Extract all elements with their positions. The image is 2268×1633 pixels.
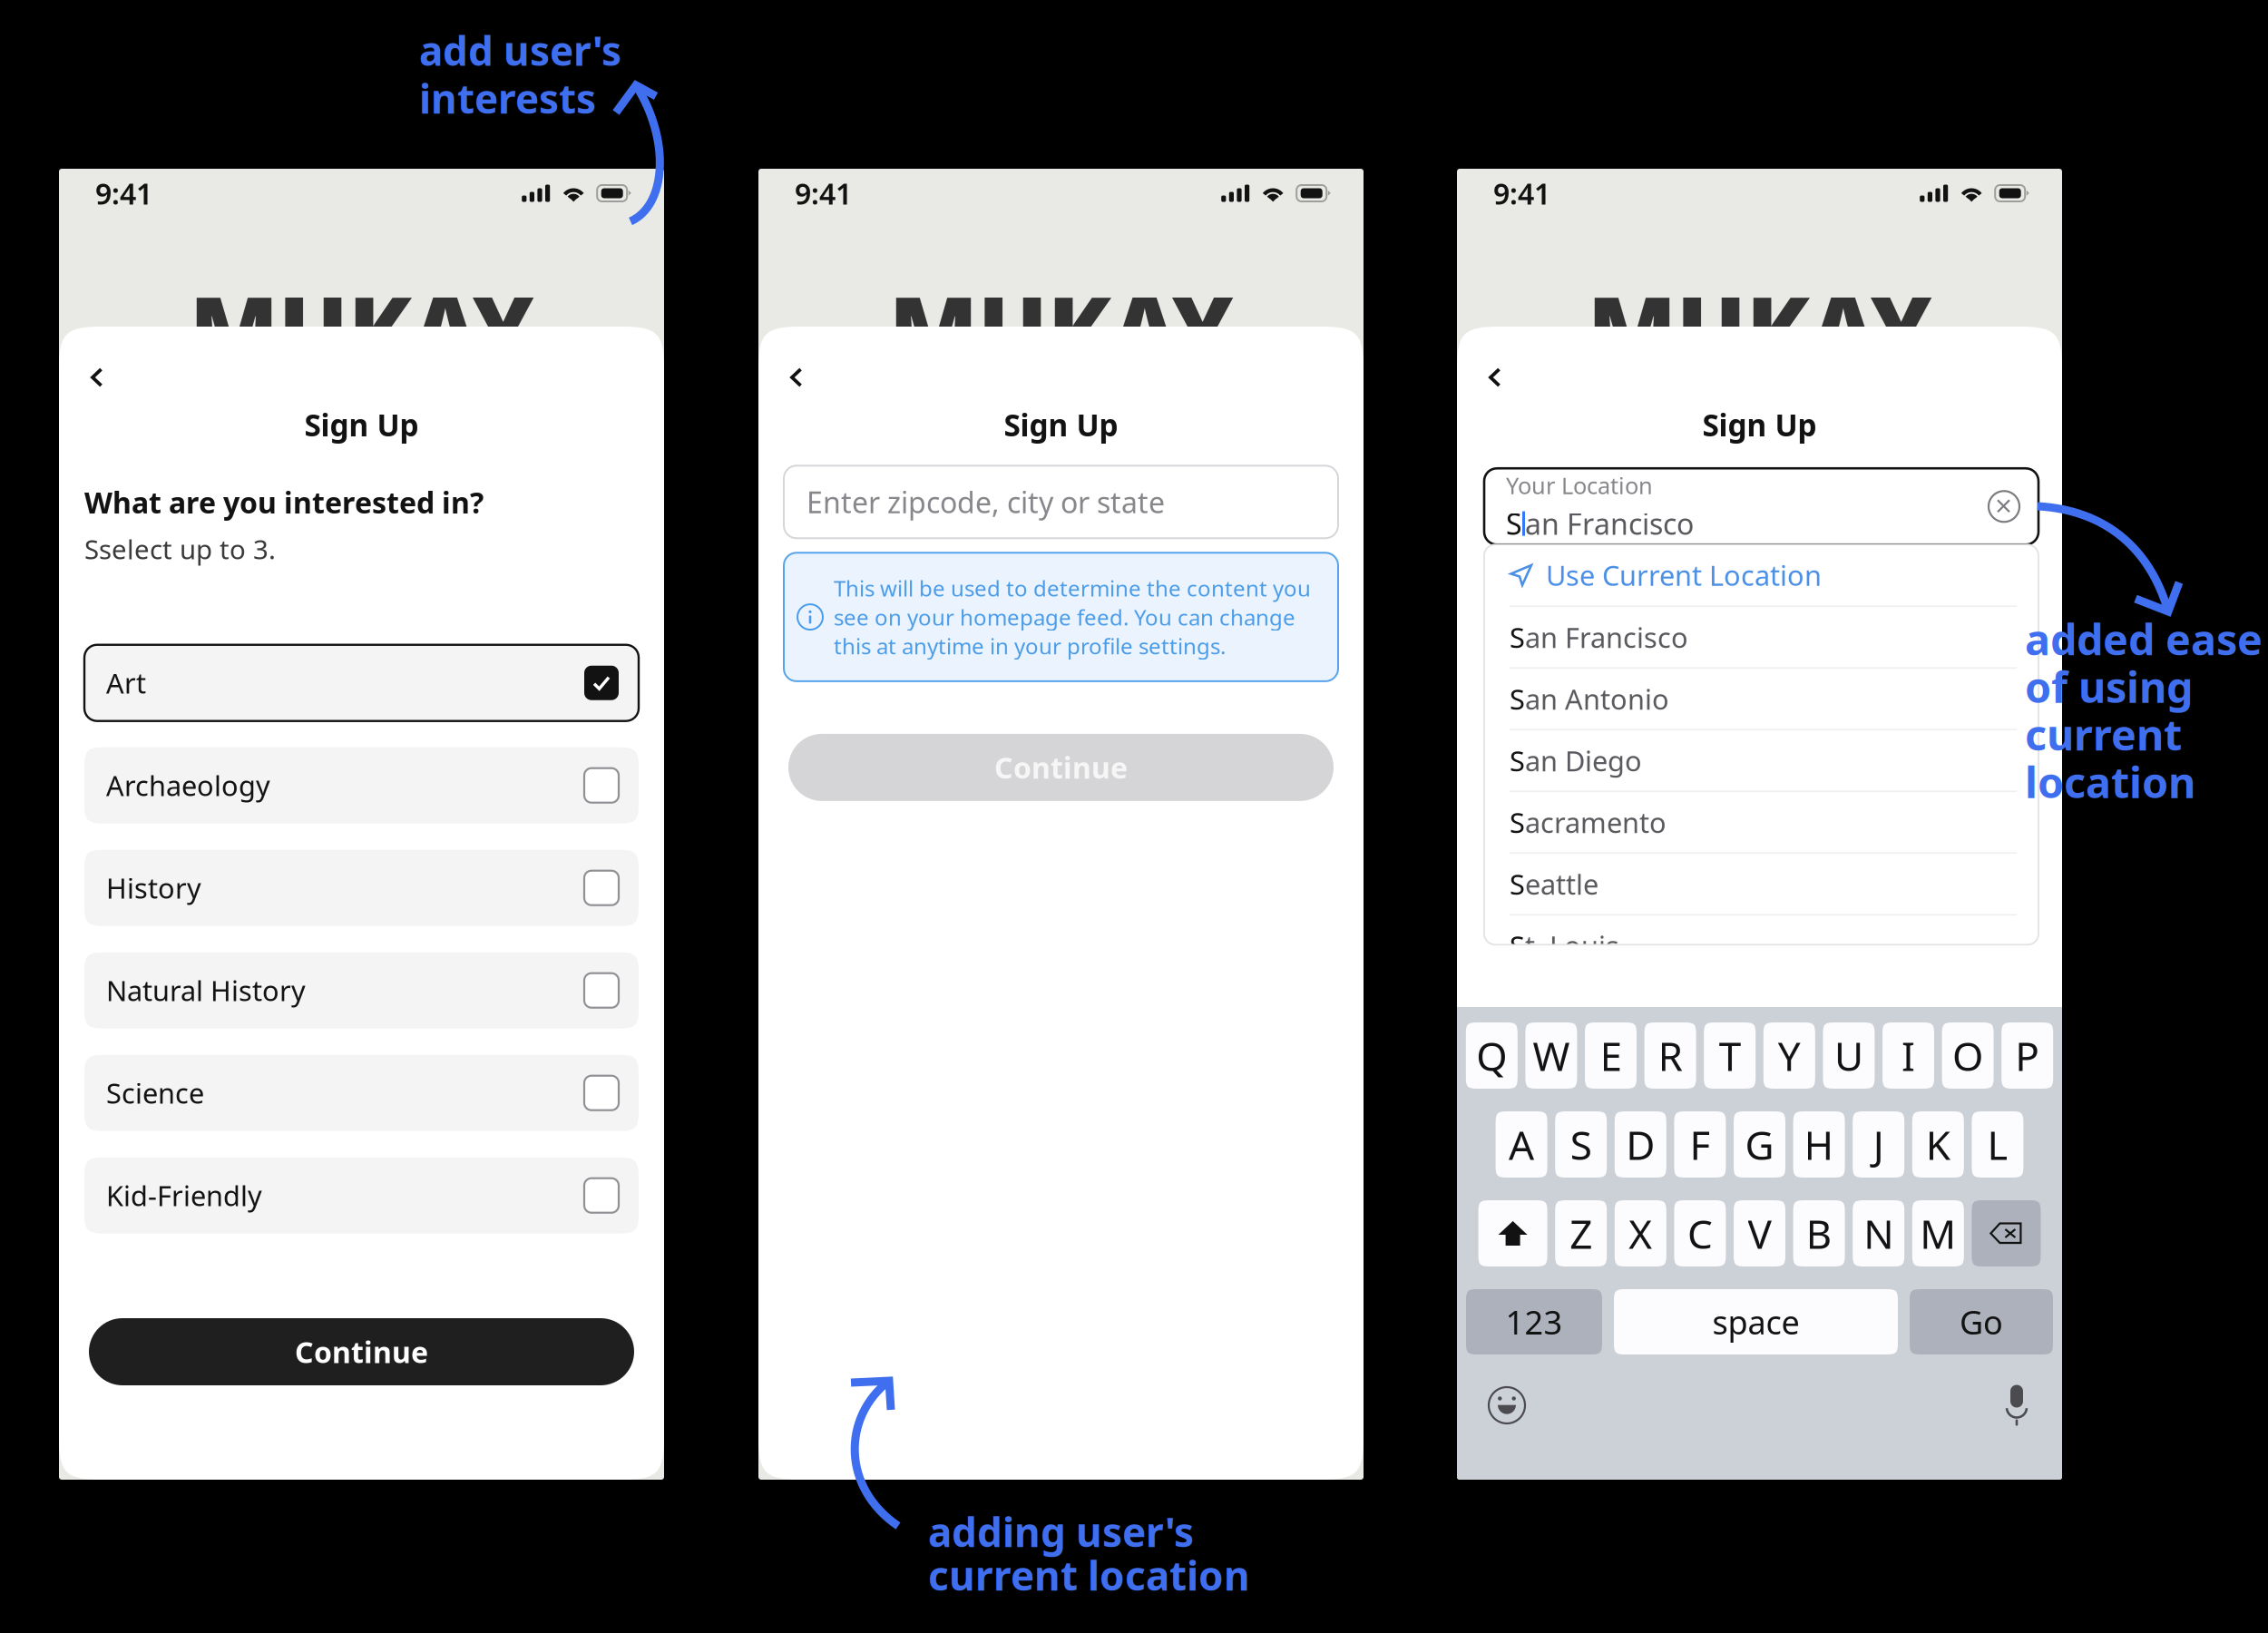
staticText: Z xyxy=(1570,1207,1592,1260)
button[interactable]: 123 xyxy=(1466,1289,1602,1354)
button[interactable]: Delete xyxy=(1972,1200,2041,1266)
button[interactable]: Continue xyxy=(788,734,1334,801)
button[interactable]: A xyxy=(1496,1111,1547,1178)
button[interactable]: U xyxy=(1823,1022,1875,1089)
staticText: L xyxy=(1987,1118,2008,1171)
button[interactable]: Emoji keyboard xyxy=(1484,1383,1530,1428)
button[interactable]: D xyxy=(1615,1111,1666,1178)
staticText: Sign Up xyxy=(1702,405,1817,445)
button[interactable]: S xyxy=(1484,669,2038,731)
staticText: current xyxy=(2025,706,2182,762)
staticText: MUKAY xyxy=(889,267,1233,389)
button[interactable]: S xyxy=(1555,1111,1607,1178)
button[interactable]: Kid-Friendly xyxy=(84,1157,639,1234)
button[interactable]: Y xyxy=(1763,1022,1815,1089)
button[interactable]: Art xyxy=(84,645,639,721)
button[interactable]: S xyxy=(1484,607,2038,669)
button[interactable]: H xyxy=(1793,1111,1845,1178)
staticText: Go xyxy=(1960,1300,2003,1344)
button[interactable]: Back xyxy=(59,327,664,405)
button[interactable]: Science xyxy=(84,1055,639,1131)
button[interactable]: Shift xyxy=(1478,1200,1547,1266)
button[interactable]: History xyxy=(84,850,639,926)
staticText: K xyxy=(1926,1118,1950,1171)
staticText: Sign Up xyxy=(1004,405,1118,445)
staticText: adding user's xyxy=(928,1505,1194,1558)
button[interactable]: W xyxy=(1525,1022,1577,1089)
staticText: Art xyxy=(106,664,146,701)
staticText: J xyxy=(1873,1118,1884,1171)
staticText: C xyxy=(1687,1207,1713,1260)
staticText: R xyxy=(1658,1029,1682,1082)
button[interactable]: Go xyxy=(1910,1289,2053,1354)
button[interactable]: Dictation xyxy=(1999,1383,2035,1428)
staticText: This will be used to determine the conte… xyxy=(834,574,1311,660)
button[interactable]: O xyxy=(1942,1022,1994,1089)
button[interactable]: Natural History xyxy=(84,952,639,1029)
button[interactable]: Your Location xyxy=(1484,468,2038,545)
button[interactable]: Z xyxy=(1555,1200,1607,1266)
staticText: an Francisco xyxy=(1525,504,1694,543)
button[interactable]: B xyxy=(1793,1200,1845,1266)
staticText: an Francisco xyxy=(1525,619,1688,656)
staticText: interests xyxy=(419,72,596,125)
staticText: U xyxy=(1834,1029,1863,1082)
button[interactable]: M xyxy=(1912,1200,1964,1266)
staticText: A xyxy=(1509,1118,1534,1171)
staticText: V xyxy=(1748,1207,1771,1260)
button[interactable]: N xyxy=(1853,1200,1904,1266)
staticText: What are you interested in? xyxy=(84,483,484,521)
staticText: 9:41 xyxy=(1493,174,1550,213)
button[interactable]: E xyxy=(1585,1022,1637,1089)
button[interactable]: F xyxy=(1674,1111,1726,1178)
button[interactable]: I xyxy=(1882,1022,1934,1089)
button[interactable]: Use Current Location xyxy=(1484,545,2038,607)
button[interactable]: S xyxy=(1484,916,2038,977)
button[interactable]: Back xyxy=(758,327,1364,405)
button[interactable]: Q xyxy=(1466,1022,1518,1089)
staticText: an Diego xyxy=(1525,742,1642,779)
staticText: Use Current Location xyxy=(1546,557,1822,594)
staticText: an Antonio xyxy=(1525,681,1669,717)
staticText: location xyxy=(2025,754,2195,810)
staticText: 123 xyxy=(1505,1300,1563,1344)
button[interactable]: space xyxy=(1614,1289,1898,1354)
staticText: eattle xyxy=(1525,866,1598,903)
staticText: T xyxy=(1719,1029,1741,1082)
staticText: S xyxy=(1506,504,1522,543)
button[interactable]: T xyxy=(1704,1022,1756,1089)
button[interactable]: Enter zipcode, city or state xyxy=(784,466,1338,538)
button[interactable]: S xyxy=(1484,792,2038,854)
button[interactable]: V xyxy=(1734,1200,1785,1266)
button[interactable]: J xyxy=(1853,1111,1904,1178)
staticText: Y xyxy=(1778,1029,1801,1082)
staticText: Your Location xyxy=(1506,470,1653,501)
button[interactable]: K xyxy=(1912,1111,1964,1178)
staticText: S xyxy=(1510,804,1525,841)
staticText: X xyxy=(1629,1207,1652,1260)
staticText: Q xyxy=(1476,1029,1507,1082)
staticText: S xyxy=(1510,681,1525,717)
button[interactable]: C xyxy=(1674,1200,1726,1266)
staticText: Natural History xyxy=(106,972,306,1009)
staticText: S xyxy=(1510,619,1525,656)
button[interactable]: Back xyxy=(1457,327,2062,405)
button[interactable]: R xyxy=(1644,1022,1696,1089)
button[interactable]: S xyxy=(1484,731,2038,792)
button[interactable]: Archaeology xyxy=(84,747,639,823)
staticText: space xyxy=(1712,1300,1799,1344)
staticText: t. Louis xyxy=(1525,927,1619,964)
staticText: MUKAY xyxy=(190,267,533,389)
staticText: acramento xyxy=(1525,804,1667,841)
button[interactable]: G xyxy=(1734,1111,1785,1178)
button[interactable]: X xyxy=(1615,1200,1666,1266)
staticText: B xyxy=(1806,1207,1832,1260)
staticText: S xyxy=(1510,742,1525,779)
staticText: P xyxy=(2015,1029,2040,1082)
staticText: Science xyxy=(106,1075,204,1111)
staticText: add user's xyxy=(419,24,621,77)
button[interactable]: Continue xyxy=(89,1318,634,1385)
button[interactable]: S xyxy=(1484,854,2038,916)
button[interactable]: L xyxy=(1972,1111,2023,1178)
button[interactable]: P xyxy=(2001,1022,2053,1089)
